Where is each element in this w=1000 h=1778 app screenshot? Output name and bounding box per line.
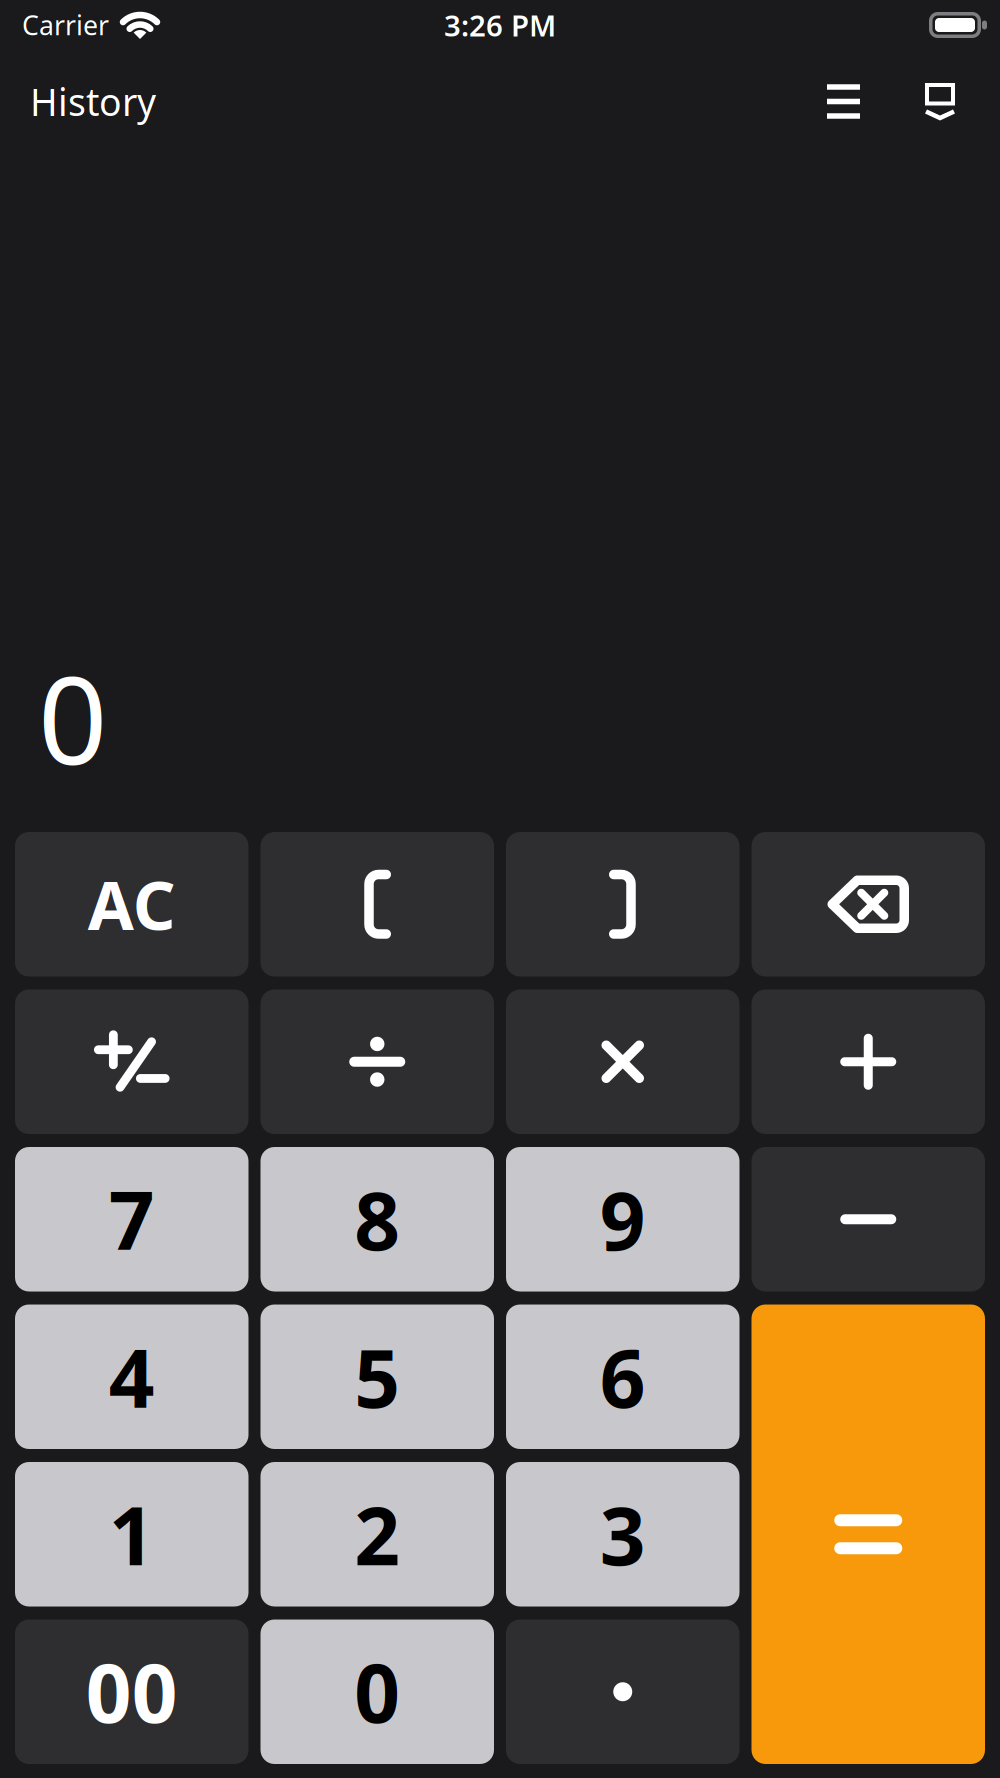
button[interactable]: Close parenthesis	[506, 832, 739, 976]
staticText: 6	[600, 1324, 646, 1430]
button[interactable]: Open parenthesis	[260, 832, 494, 976]
button[interactable]: 0	[260, 1619, 494, 1764]
button[interactable]: 9	[506, 1147, 739, 1291]
staticText: History	[30, 77, 156, 126]
staticText: 2	[354, 1481, 400, 1587]
staticText: 9	[600, 1166, 646, 1272]
button[interactable]: History	[30, 77, 156, 126]
button[interactable]: 3	[506, 1462, 739, 1606]
button[interactable]: 2	[260, 1462, 494, 1606]
staticText: 3:26 PM	[444, 5, 556, 44]
button[interactable]: AC	[15, 832, 248, 976]
button[interactable]: 4	[15, 1304, 248, 1449]
staticText: 8	[354, 1166, 400, 1272]
staticText: AC	[88, 860, 176, 948]
staticText: 1	[109, 1481, 155, 1587]
staticText: 0	[38, 637, 107, 798]
button[interactable]: Decimal point	[506, 1619, 739, 1764]
button[interactable]: 6	[506, 1304, 739, 1449]
button[interactable]: Divide	[260, 989, 494, 1134]
button[interactable]: Add	[751, 989, 985, 1134]
staticText: 3	[600, 1481, 646, 1587]
staticText: Carrier	[22, 7, 109, 43]
staticText: 0	[354, 1639, 400, 1745]
staticText: 4	[109, 1324, 155, 1430]
button[interactable]: Multiply	[506, 989, 739, 1134]
button[interactable]: Backspace	[751, 832, 985, 976]
staticText: 7	[109, 1166, 155, 1272]
button[interactable]: 5	[260, 1304, 494, 1449]
button[interactable]: Menu	[827, 84, 860, 119]
button[interactable]: 1	[15, 1462, 248, 1606]
staticText: 5	[354, 1324, 400, 1430]
button[interactable]: 8	[260, 1147, 494, 1291]
button[interactable]: Equals	[751, 1304, 985, 1764]
staticText: 00	[86, 1639, 178, 1745]
button[interactable]: Plus minus	[15, 989, 248, 1134]
button[interactable]: Subtract	[751, 1147, 985, 1291]
button[interactable]: Toggle display	[925, 83, 955, 120]
button[interactable]: 7	[15, 1147, 248, 1291]
button[interactable]: 00	[15, 1619, 248, 1764]
